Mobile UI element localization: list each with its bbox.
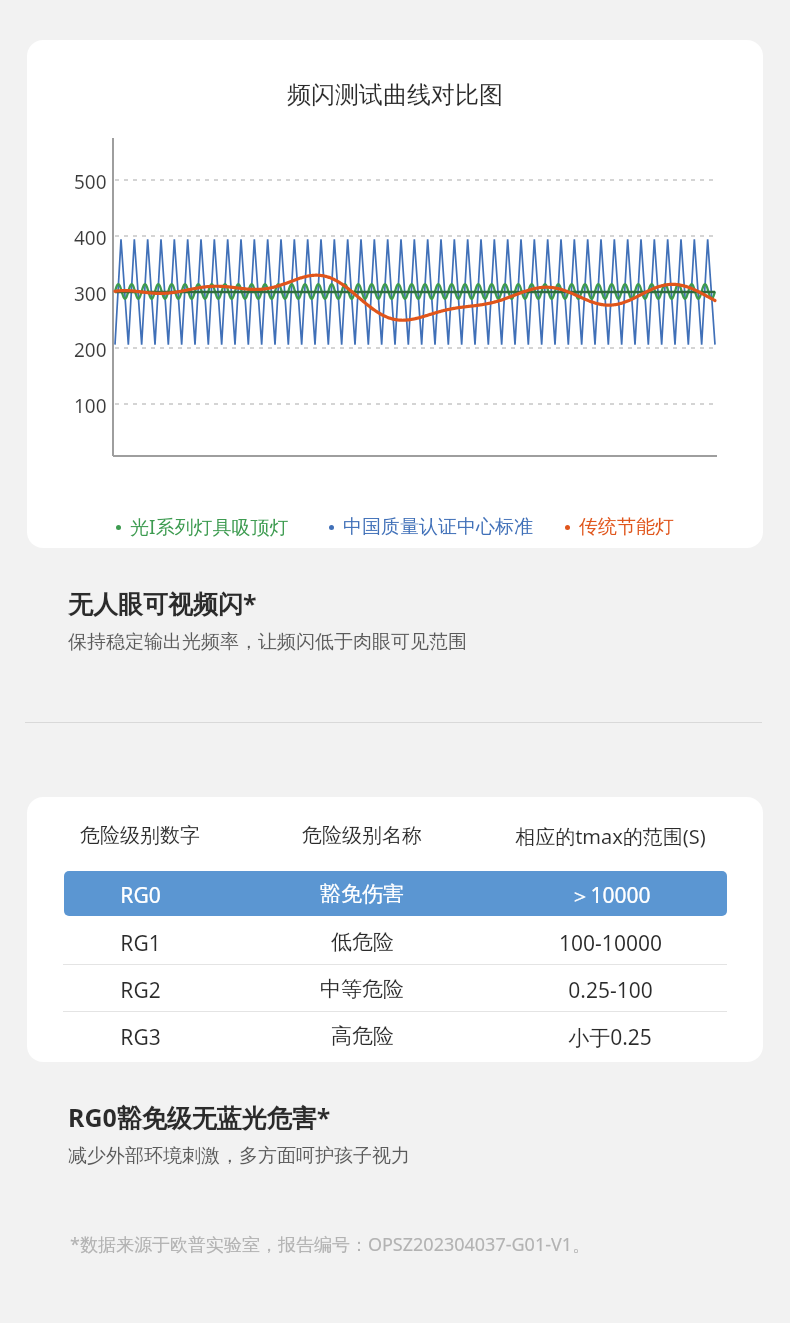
staticText: 小于0.25: [568, 1023, 652, 1052]
staticText: 传统节能灯: [579, 515, 674, 539]
staticText: 危险级别数字: [80, 823, 200, 848]
staticText: RG0: [120, 881, 161, 910]
other: 频闪测试曲线对比图: [113, 138, 727, 456]
staticText: 0.25-100: [568, 976, 653, 1005]
button[interactable]: [64, 871, 727, 916]
staticText: 低危险: [331, 929, 394, 955]
staticText: 中国质量认证中心标准: [343, 515, 533, 539]
staticText: RG0豁免级无蓝光危害*: [68, 1100, 331, 1134]
staticText: 中等危险: [320, 976, 404, 1002]
staticText: 500: [74, 169, 107, 195]
button[interactable]: 危险级别数字: [27, 797, 763, 1062]
staticText: 100: [74, 393, 107, 419]
staticText: RG1: [120, 929, 161, 958]
staticText: 高危险: [331, 1023, 394, 1049]
button[interactable]: 频闪测试曲线对比图: [27, 40, 763, 548]
staticText: 减少外部环境刺激，多方面呵护孩子视力: [68, 1144, 410, 1168]
staticText: ＞10000: [569, 881, 651, 910]
staticText: 无人眼可视频闪*: [68, 586, 257, 620]
staticText: 相应的tmax的范围(S): [515, 823, 706, 850]
button[interactable]: 传统节能灯: [565, 515, 674, 539]
staticText: 危险级别名称: [302, 823, 422, 848]
staticText: 光I系列灯具吸顶灯: [130, 514, 289, 540]
staticText: 保持稳定输出光频率，让频闪低于肉眼可见范围: [68, 630, 467, 654]
staticText: 300: [74, 281, 107, 307]
staticText: 100-10000: [559, 929, 662, 958]
button[interactable]: 光I系列灯具吸顶灯: [116, 514, 289, 540]
staticText: *数据来源于欧普实验室，报告编号：OPSZ202304037-G01-V1。: [70, 1232, 591, 1257]
staticText: 频闪测试曲线对比图: [27, 80, 763, 110]
staticText: 200: [74, 337, 107, 363]
staticText: RG2: [120, 976, 161, 1005]
staticText: 400: [74, 225, 107, 251]
staticText: RG3: [120, 1023, 161, 1052]
staticText: 豁免伤害: [320, 881, 404, 907]
button[interactable]: 中国质量认证中心标准: [329, 515, 533, 539]
